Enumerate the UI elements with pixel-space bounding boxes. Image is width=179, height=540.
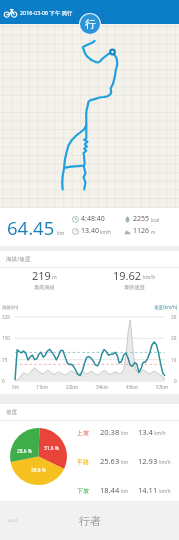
staticText: 行者 [79,514,101,528]
staticText: 219 [32,268,51,283]
staticText: 14.11 [138,485,158,495]
button[interactable]: Route map [0,24,179,208]
staticText: 10 [171,357,177,363]
staticText: 下坡 [77,487,97,495]
staticText: 0m [12,384,19,390]
staticText: 上坡 [77,429,97,437]
staticText: 1126 [133,226,150,236]
staticText: 0 [2,378,5,384]
button[interactable]: 64.45 [0,208,179,246]
button[interactable]: 19.62 [89,268,179,291]
staticText: 海拔(m) [2,304,19,310]
staticText: 225 [2,314,10,320]
staticText: kcal [151,217,160,223]
staticText: 坡度 [6,409,18,416]
staticText: 12.93 [138,456,158,466]
button[interactable]: Xingzhe [80,14,100,34]
button[interactable]: 上坡 [77,427,179,437]
staticText: 平路 [77,458,97,466]
staticText: km [120,459,128,465]
staticText: 57km [156,384,169,390]
staticText: 行 [85,17,96,31]
button[interactable]: Cycling [0,0,179,24]
staticText: 海拔/速度 [6,255,31,263]
staticText: 13.4 [138,427,153,437]
staticText: 45km [126,384,139,390]
staticText: 31.6 % [44,445,59,452]
staticText: m [151,229,156,235]
staticText: km/h [100,229,112,235]
staticText: km [120,488,128,494]
staticText: km [57,230,65,237]
staticText: 22km [66,384,79,390]
staticText: 19.62 [113,268,142,283]
staticText: 11km [36,384,49,390]
staticText: km/h [158,459,171,465]
button[interactable]: 219 [0,268,89,291]
staticText: 2255 [133,214,150,224]
staticText: 39.8 % [31,467,46,474]
staticText: 34km [96,384,109,390]
staticText: 0 [174,378,177,384]
staticText: km/h [158,488,171,494]
staticText: 28.6 % [17,448,32,455]
staticText: km [120,430,128,436]
staticText: v3.4.1 [8,518,18,523]
staticText: 2016-03-06 下午 骑行 [20,9,73,16]
staticText: 20 [171,335,177,341]
staticText: km/h [153,430,166,436]
staticText: m [52,274,57,281]
button[interactable]: 平路 [77,456,179,466]
staticText: 最快速度 [124,284,145,291]
staticText: 最高海拔 [34,284,55,291]
staticText: 25.63 [100,456,120,466]
staticText: km/h [143,274,156,281]
staticText: 75 [2,357,8,363]
staticText: 速度(km/h) [154,304,178,310]
staticText: 18.44 [100,485,120,495]
staticText: 20.38 [100,427,120,437]
staticText: 30 [171,314,177,320]
staticText: 13.40 [81,226,99,236]
staticText: 150 [2,335,10,341]
staticText: 4:48:40 [81,214,105,224]
staticText: 64.45 [7,215,55,240]
button[interactable]: 下坡 [77,485,179,495]
other: Cycling [4,6,17,19]
